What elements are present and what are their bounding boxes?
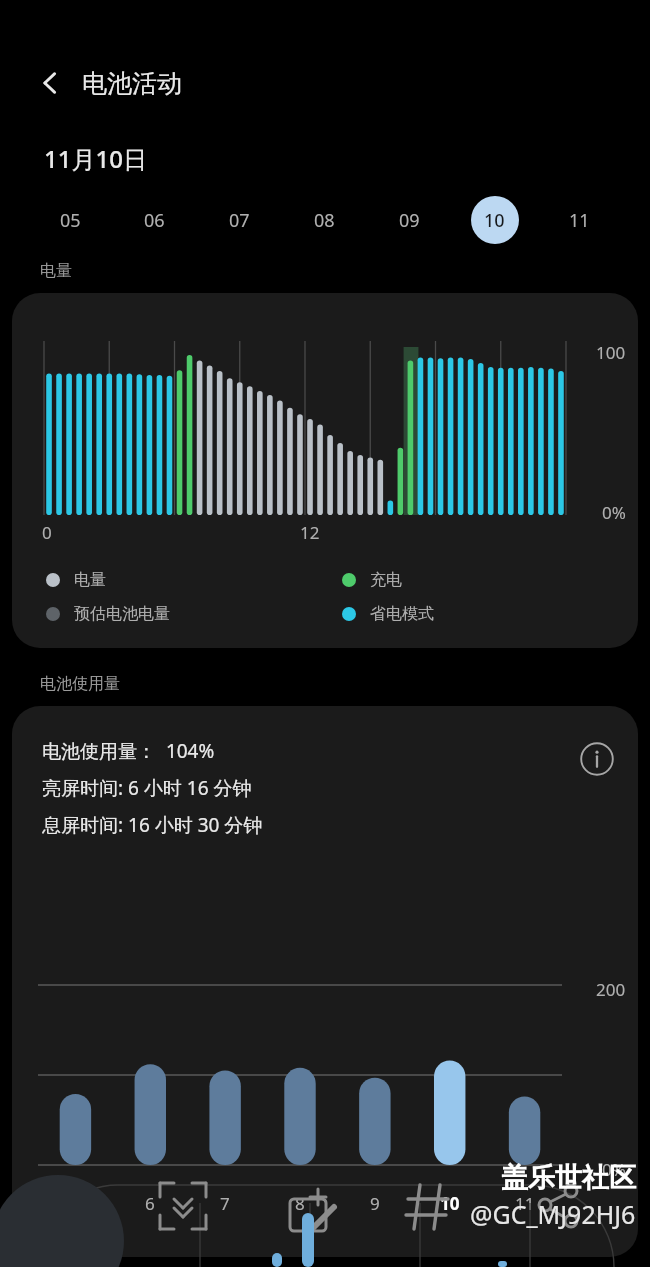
staticText: 电池使用量： 104% xyxy=(42,738,215,764)
staticText: 0% xyxy=(602,501,626,524)
staticText: 省电模式 xyxy=(370,604,434,624)
button[interactable]: Info xyxy=(576,738,618,780)
staticText: 息屏时间: 16 小时 30 分钟 xyxy=(42,812,263,838)
button[interactable]: Tags xyxy=(396,1171,458,1233)
staticText: 电池活动 xyxy=(82,68,182,99)
button[interactable]: Edit xyxy=(278,1171,340,1233)
staticText: 09 xyxy=(399,208,420,233)
staticText: @GC_MJ92HJ6 xyxy=(470,1197,636,1231)
staticText: 9 xyxy=(370,1192,380,1215)
staticText: 10 xyxy=(440,1192,460,1215)
staticText: 预估电池电量 xyxy=(74,604,170,624)
button[interactable]: 100 xyxy=(12,293,638,648)
staticText: 200 xyxy=(596,978,626,1001)
staticText: 充电 xyxy=(370,570,402,590)
button[interactable]: 10 xyxy=(452,193,537,247)
staticText: 电量 xyxy=(40,261,72,281)
button[interactable]: 05 xyxy=(28,193,112,247)
staticText: 11 xyxy=(569,208,590,233)
staticText: 100 xyxy=(596,341,626,364)
button[interactable]: 08 xyxy=(282,193,367,247)
button[interactable]: 09 xyxy=(367,193,452,247)
button[interactable]: 06 xyxy=(112,193,197,247)
button[interactable]: 07 xyxy=(197,193,282,247)
staticText: 12 xyxy=(300,521,320,544)
staticText: 06 xyxy=(144,208,165,233)
staticText: 07 xyxy=(229,208,250,233)
staticText: 7 xyxy=(220,1192,230,1215)
staticText: 11月10日 xyxy=(44,142,147,175)
staticText: 10 xyxy=(484,208,505,233)
staticText: 6 xyxy=(145,1192,155,1215)
staticText: 05 xyxy=(60,208,81,233)
staticText: 电池使用量 xyxy=(40,674,120,694)
button[interactable]: 11 xyxy=(537,193,622,247)
staticText: 电量 xyxy=(74,570,106,590)
staticText: 亮屏时间: 6 小时 16 分钟 xyxy=(42,775,252,801)
staticText: 8 xyxy=(295,1192,305,1215)
button[interactable]: Scroll capture xyxy=(148,1171,210,1233)
staticText: 0 xyxy=(42,521,52,544)
staticText: 08 xyxy=(314,208,335,233)
button[interactable]: 电池使用量： 104% xyxy=(12,706,638,1257)
staticText: 0% xyxy=(602,1158,626,1181)
staticText: 11 xyxy=(515,1192,535,1215)
button[interactable]: Share xyxy=(520,1171,582,1233)
staticText: 盖乐世社区 xyxy=(501,1161,636,1195)
button[interactable]: Back xyxy=(26,59,74,107)
